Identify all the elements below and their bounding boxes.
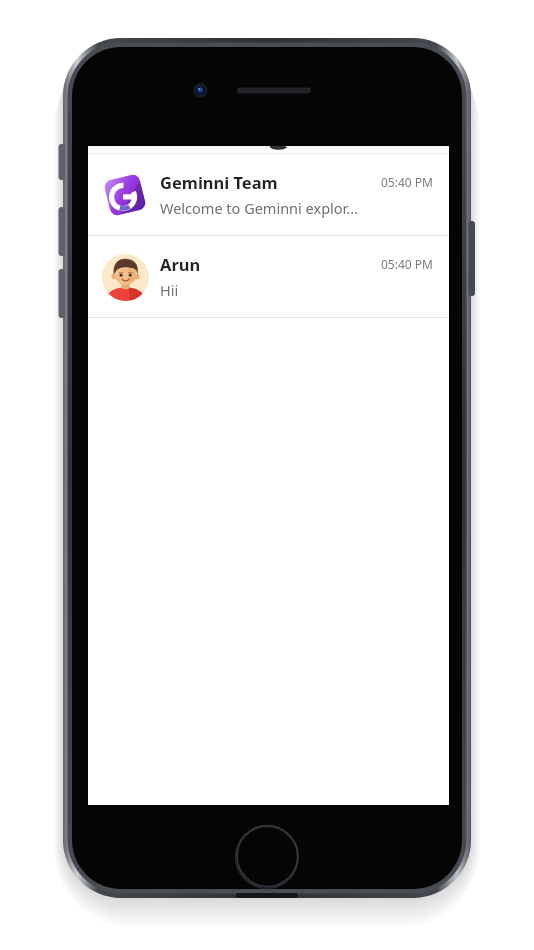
button[interactable]: Arun avatar <box>88 236 449 317</box>
staticText: 05:40 PM <box>381 256 433 272</box>
staticText: Geminni Team <box>160 171 278 193</box>
staticText: Arun <box>160 253 201 275</box>
staticText: Hii <box>160 280 179 300</box>
other: Geminni Team avatar <box>101 171 149 219</box>
other: Arun avatar <box>101 253 149 301</box>
button[interactable]: Geminni Team avatar <box>88 154 449 235</box>
staticText: 05:40 PM <box>381 174 433 190</box>
staticText: Welcome to Geminni explor... <box>160 198 358 218</box>
